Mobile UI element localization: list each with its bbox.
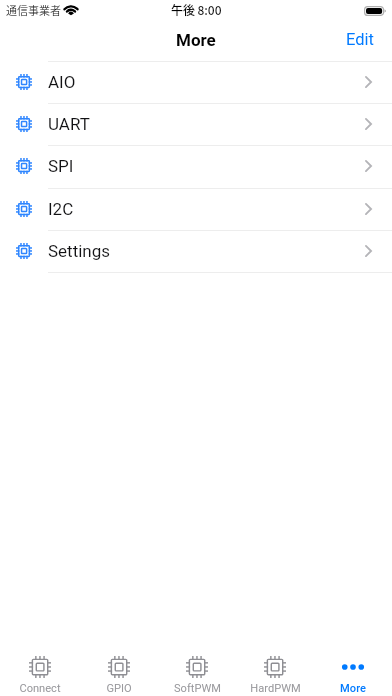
staticText: More: [176, 30, 216, 50]
staticText: AIO: [48, 72, 76, 92]
button[interactable]: AIO: [0, 61, 392, 103]
button[interactable]: I2C: [0, 188, 392, 230]
staticText: SoftPWM: [174, 682, 221, 695]
button[interactable]: Edit: [328, 22, 392, 57]
button[interactable]: UART: [0, 103, 392, 145]
staticText: HardPWM: [250, 682, 301, 695]
button[interactable]: HardPWM: [236, 647, 314, 695]
button[interactable]: GPIO: [79, 647, 158, 695]
button[interactable]: More: [314, 647, 392, 695]
staticText: I2C: [48, 199, 74, 219]
button[interactable]: SoftPWM: [158, 647, 236, 695]
button[interactable]: SPI: [0, 145, 392, 187]
staticText: More: [340, 682, 366, 695]
staticText: SPI: [48, 156, 74, 176]
staticText: Connect: [19, 682, 61, 695]
staticText: UART: [48, 114, 90, 134]
button[interactable]: Connect: [0, 647, 79, 695]
staticText: Settings: [48, 241, 111, 261]
button[interactable]: Settings: [0, 230, 392, 272]
staticText: 午後 8:00: [171, 1, 222, 18]
staticText: 通信事業者: [6, 2, 61, 18]
staticText: GPIO: [106, 682, 132, 695]
staticText: Edit: [346, 30, 374, 49]
